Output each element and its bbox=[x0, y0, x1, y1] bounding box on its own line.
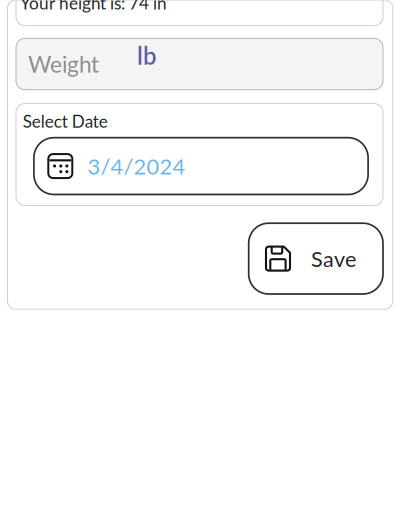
staticText: Save bbox=[311, 246, 356, 271]
staticText: lb bbox=[137, 41, 157, 70]
button[interactable]: 3/4/2024 bbox=[34, 138, 368, 194]
staticText: Your height is: 74 in bbox=[20, 0, 167, 13]
button[interactable]: Weight bbox=[16, 38, 383, 90]
staticText: Select Date bbox=[23, 111, 108, 131]
staticText: 3/4/2024 bbox=[87, 153, 185, 179]
button[interactable]: Save bbox=[249, 223, 383, 294]
staticText: Weight bbox=[28, 50, 99, 78]
